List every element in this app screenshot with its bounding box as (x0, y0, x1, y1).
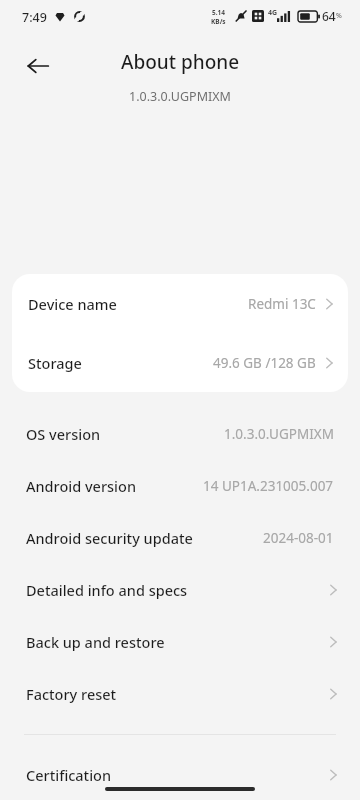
staticText: KB/s (211, 17, 226, 26)
button[interactable]: OS version (0, 416, 360, 452)
staticText: Redmi 13C (248, 295, 316, 313)
staticText: 49.6 GB /128 GB (213, 354, 316, 372)
staticText: 64 (322, 8, 336, 24)
button[interactable]: Storage (12, 333, 348, 392)
button[interactable]: Factory reset (0, 676, 360, 712)
button[interactable]: Back (16, 44, 60, 88)
staticText: 14 UP1A.231005.007 (203, 477, 334, 495)
staticText: Device name (28, 294, 117, 314)
staticText: 5.14 (212, 8, 225, 17)
staticText: 1.0.3.0.UGPMIXM (224, 425, 334, 443)
staticText: Android version (26, 476, 136, 496)
button[interactable]: Detailed info and specs (0, 572, 360, 608)
button[interactable]: Certification (0, 757, 360, 793)
staticText: 2024-08-01 (263, 529, 334, 547)
button[interactable]: Android version (0, 468, 360, 504)
staticText: Android security update (26, 528, 193, 548)
staticText: Certification (26, 765, 112, 785)
staticText: OS version (26, 424, 101, 444)
button[interactable]: Android security update (0, 520, 360, 556)
staticText: Storage (28, 353, 82, 373)
button[interactable]: Device name (12, 274, 348, 333)
staticText: Back up and restore (26, 632, 165, 652)
staticText: About phone (121, 49, 240, 75)
staticText: Factory reset (26, 684, 117, 704)
staticText: 7:49 (22, 9, 47, 26)
staticText: 4G (268, 8, 278, 18)
staticText: % (336, 11, 342, 21)
staticText: 1.0.3.0.UGPMIXM (129, 88, 231, 105)
button[interactable]: Back up and restore (0, 624, 360, 660)
staticText: Detailed info and specs (26, 580, 188, 600)
